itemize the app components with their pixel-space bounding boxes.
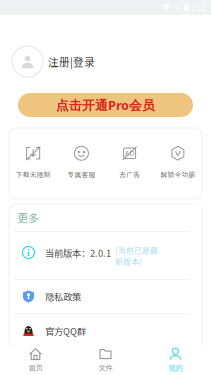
button[interactable]: 官方QQ群 <box>9 314 202 348</box>
staticText: 首页 <box>28 362 42 373</box>
staticText: 下载无限制 <box>16 169 51 179</box>
button[interactable]: 文件 <box>70 346 140 375</box>
button[interactable]: 我的 <box>140 346 210 375</box>
staticText: 去广告 <box>119 169 140 179</box>
button[interactable]: 专属客服 <box>57 128 105 199</box>
staticText: 我的 <box>168 362 182 373</box>
staticText: 点击开通Pro会员 <box>56 96 155 114</box>
button[interactable]: 首页 <box>0 346 70 375</box>
staticText: 3:12 <box>191 2 205 13</box>
button[interactable]: AD <box>105 128 154 199</box>
staticText: AD <box>125 149 135 157</box>
staticText: 更多 <box>17 210 39 225</box>
staticText: (当前已是最新版本) <box>115 244 158 267</box>
button[interactable]: 下载无限制 <box>9 128 57 199</box>
button[interactable]: 解锁全功能 <box>154 128 202 199</box>
button[interactable]: 当前版本：2.0.1 <box>9 232 202 279</box>
staticText: 注册|登录 <box>48 54 95 69</box>
staticText: 解锁全功能 <box>160 169 195 179</box>
button[interactable]: 注册|登录 <box>0 46 211 77</box>
staticText: 当前版本：2.0.1 <box>45 246 111 259</box>
staticText: 隐私政策 <box>45 290 81 303</box>
button[interactable]: 点击开通Pro会员 <box>18 93 193 117</box>
button[interactable]: 隐私政策 <box>9 280 202 313</box>
staticText: 官方QQ群 <box>45 324 86 338</box>
staticText: 专属客服 <box>67 169 95 179</box>
staticText: 文件 <box>98 362 112 373</box>
